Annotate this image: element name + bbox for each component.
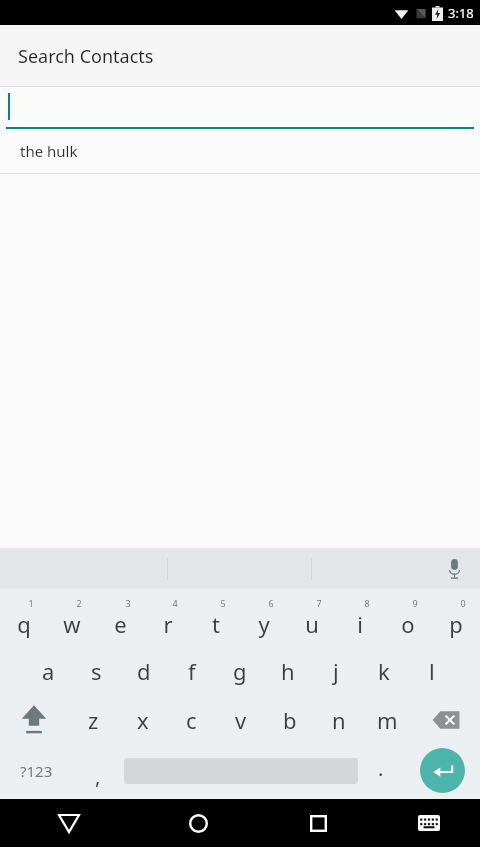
staticText: o [401, 609, 415, 639]
staticText: 1 [28, 597, 34, 609]
staticText: a [42, 656, 55, 686]
button[interactable]: d [120, 646, 168, 695]
button[interactable]: 8 [336, 589, 384, 646]
staticText: e [114, 609, 127, 639]
staticText: s [91, 656, 102, 686]
button[interactable]: Shift [0, 695, 68, 744]
button[interactable]: 1 [0, 589, 48, 646]
button[interactable]: Home [138, 799, 258, 847]
button[interactable]: g [216, 646, 264, 695]
button[interactable]: c [167, 695, 216, 744]
button[interactable]: j [312, 646, 360, 695]
button[interactable]: 6 [240, 589, 288, 646]
button[interactable]: the hulk [0, 129, 480, 174]
button[interactable]: s [72, 646, 120, 695]
staticText: 5 [220, 597, 226, 609]
button[interactable]: 0 [432, 589, 480, 646]
staticText: h [281, 656, 295, 686]
button[interactable]: f [168, 646, 216, 695]
staticText: l [429, 656, 435, 686]
button[interactable]: 3 [96, 589, 144, 646]
staticText: c [186, 705, 197, 735]
staticText: 2 [76, 597, 82, 609]
staticText: t [212, 609, 220, 639]
button[interactable]: a [24, 646, 72, 695]
staticText: ?123 [20, 761, 53, 781]
staticText: 3 [125, 597, 131, 609]
button[interactable]: 7 [288, 589, 336, 646]
button[interactable]: 9 [384, 589, 432, 646]
button[interactable]: Space [124, 744, 358, 797]
button[interactable]: Backspace [412, 695, 480, 744]
button[interactable]: k [360, 646, 408, 695]
button[interactable]: v [216, 695, 265, 744]
button[interactable]: m [363, 695, 412, 744]
staticText: 4 [172, 597, 178, 609]
staticText: r [163, 609, 173, 639]
staticText: w [63, 609, 81, 639]
button[interactable]: Switch keyboard [378, 799, 480, 847]
staticText: y [258, 609, 270, 639]
button[interactable]: Recents [258, 799, 378, 847]
staticText: n [332, 705, 346, 735]
button[interactable]: ?123 [0, 744, 72, 797]
button[interactable]: Back [0, 799, 138, 847]
button[interactable]: 5 [192, 589, 240, 646]
staticText: 9 [412, 597, 418, 609]
staticText: f [188, 656, 196, 686]
staticText: b [283, 705, 297, 735]
button[interactable]: Voice input [440, 555, 468, 583]
staticText: x [137, 705, 149, 735]
staticText: q [17, 609, 31, 639]
staticText: 6 [268, 597, 274, 609]
button[interactable]: h [264, 646, 312, 695]
staticText: g [233, 656, 247, 686]
staticText: 0 [460, 597, 466, 609]
staticText: k [378, 656, 390, 686]
staticText: z [88, 705, 99, 735]
staticText: 7 [316, 597, 322, 609]
staticText: m [377, 705, 398, 735]
staticText: u [305, 609, 319, 639]
button[interactable]: b [265, 695, 314, 744]
staticText: d [137, 656, 151, 686]
staticText: v [235, 705, 247, 735]
button[interactable]: l [408, 646, 456, 695]
staticText: 3:18 [448, 4, 474, 22]
button[interactable]: Enter [404, 744, 480, 797]
staticText: 8 [364, 597, 370, 609]
button[interactable]: 2 [48, 589, 96, 646]
button[interactable]: z [68, 695, 118, 744]
button[interactable] [0, 87, 480, 129]
staticText: Search Contacts [18, 44, 154, 69]
button[interactable]: n [314, 695, 363, 744]
staticText: j [333, 656, 339, 686]
staticText: p [449, 609, 463, 639]
button[interactable]: , [72, 744, 124, 797]
staticText: . [378, 755, 384, 782]
staticText: i [357, 609, 363, 639]
button[interactable]: . [358, 744, 404, 797]
staticText: , [95, 763, 101, 790]
button[interactable]: x [118, 695, 167, 744]
staticText: the hulk [20, 141, 78, 161]
button[interactable]: 4 [144, 589, 192, 646]
